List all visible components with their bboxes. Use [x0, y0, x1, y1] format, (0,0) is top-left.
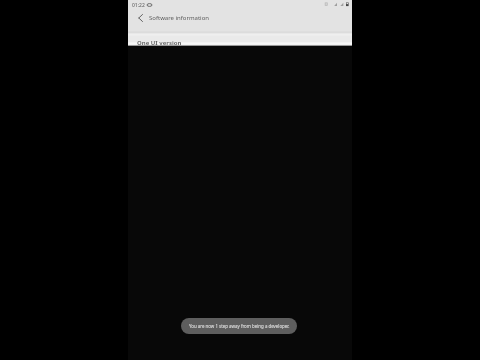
staticText: You are now 1 step away from being a dev…	[189, 323, 290, 329]
button[interactable]: Back	[132, 11, 148, 25]
staticText: 01:22	[132, 2, 145, 9]
button[interactable]: You are now 1 step away from being a dev…	[181, 318, 297, 334]
staticText: Software information	[149, 14, 209, 22]
button[interactable]: One UI version	[128, 36, 352, 46]
staticText: One UI version	[137, 39, 182, 47]
